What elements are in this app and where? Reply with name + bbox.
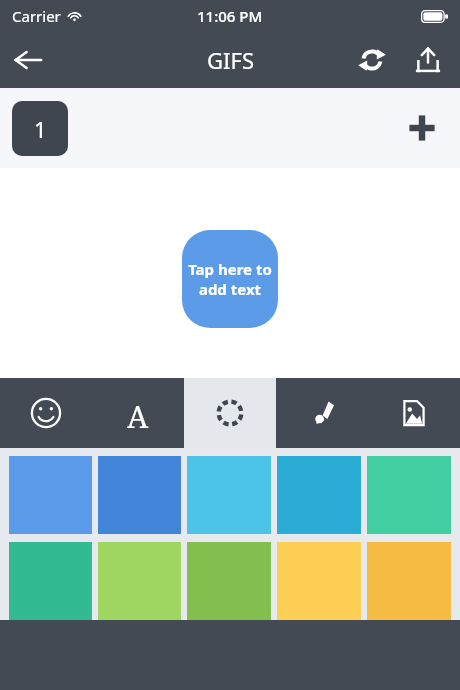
button[interactable]: Shapes xyxy=(184,378,276,448)
staticText: 1 xyxy=(34,114,47,144)
staticText: A xyxy=(127,396,149,430)
button[interactable]: Brush xyxy=(276,378,368,448)
staticText: 11:06 PM xyxy=(197,6,263,26)
staticText: GIFS xyxy=(207,45,254,75)
button[interactable]: Add page xyxy=(394,100,450,156)
button[interactable]: Image xyxy=(368,378,460,448)
staticText: Tap here to add text xyxy=(182,259,278,299)
button[interactable]: Refresh xyxy=(344,32,400,88)
button[interactable]: Stickers xyxy=(0,378,92,448)
staticText: Carrier xyxy=(12,6,61,26)
button[interactable]: Back xyxy=(0,32,56,88)
button[interactable]: 1 xyxy=(12,101,68,156)
button[interactable]: Text xyxy=(92,378,184,448)
button[interactable]: Share xyxy=(400,32,456,88)
button[interactable]: Tap here to add text xyxy=(182,230,278,328)
